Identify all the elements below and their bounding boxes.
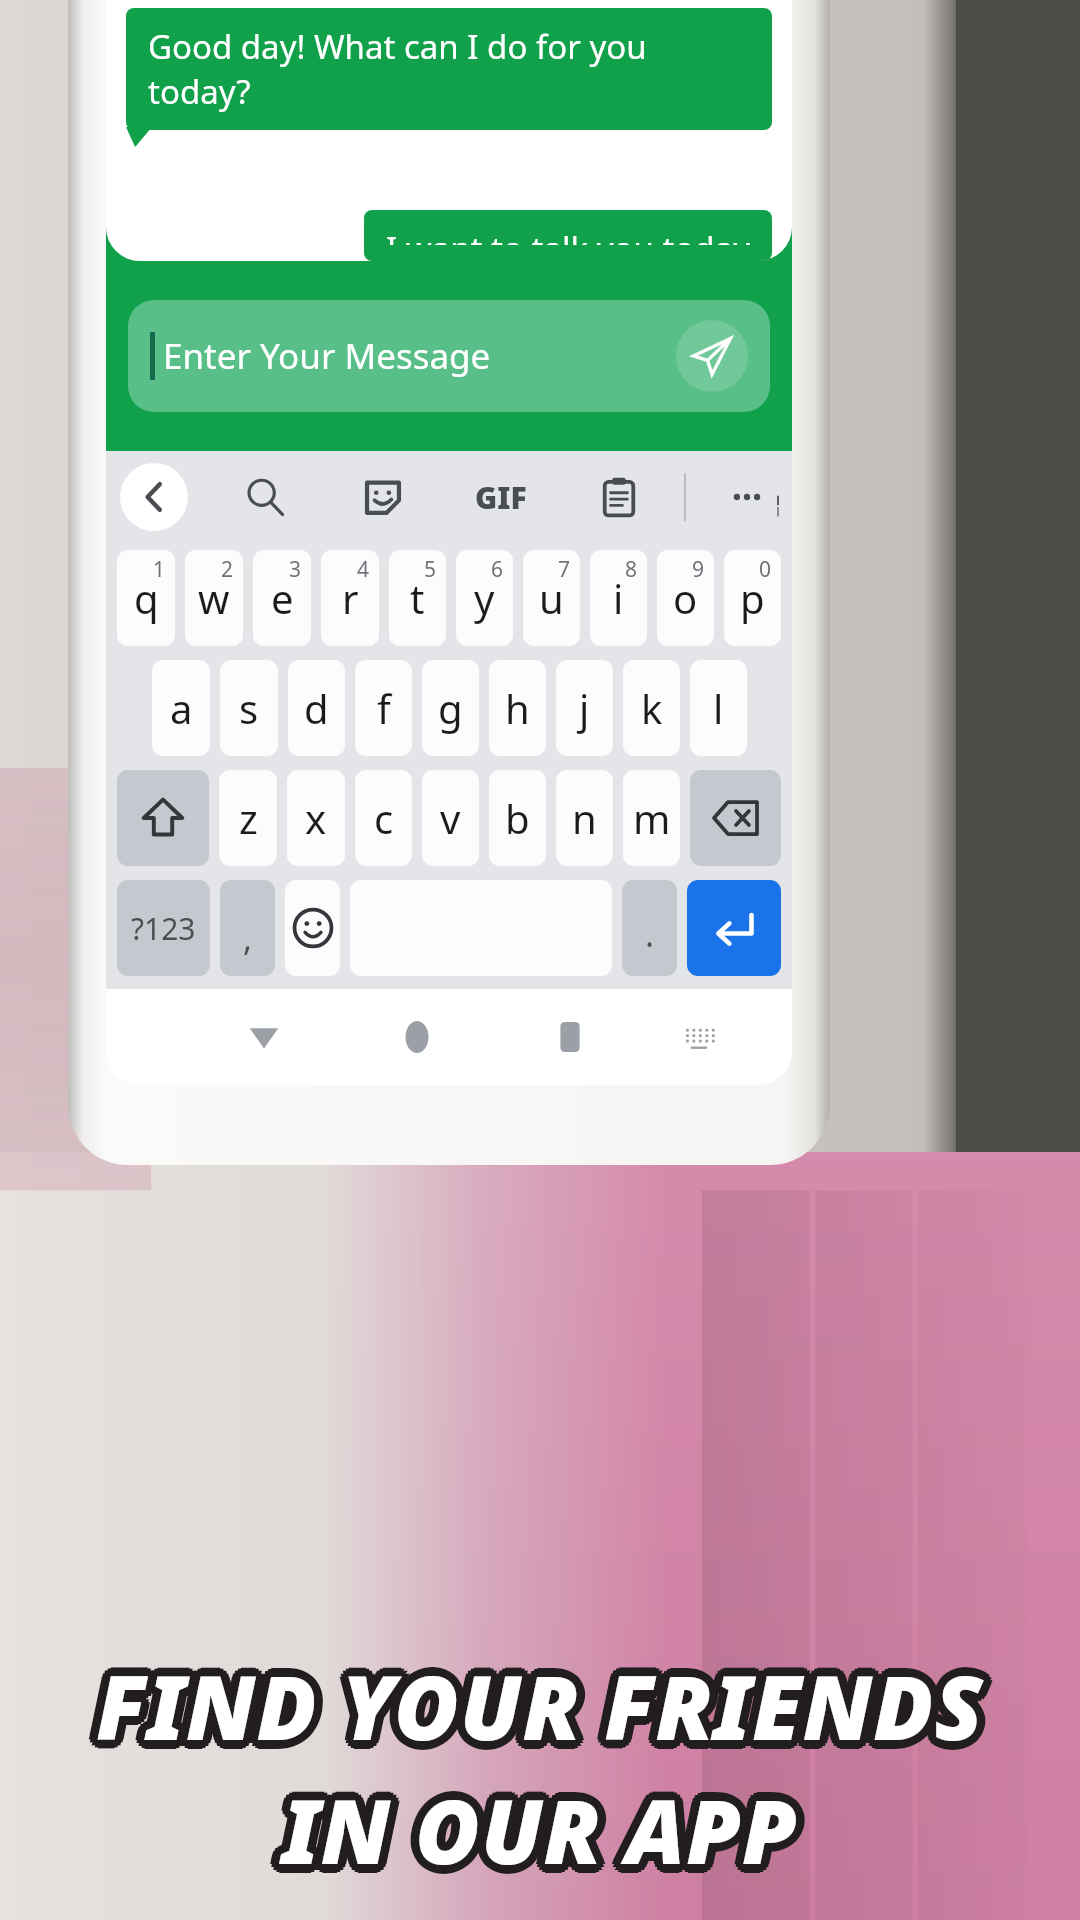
staticText: c <box>374 791 394 845</box>
staticText: IN OUR APP <box>291 1770 807 1890</box>
staticText: FIND YOUR FRIENDS <box>93 1654 981 1774</box>
staticText: 6 <box>491 555 504 584</box>
staticText: ?123 <box>131 908 196 949</box>
staticText: n <box>572 791 597 845</box>
staticText: FIND YOUR FRIENDS <box>102 1652 990 1772</box>
staticText: x <box>305 791 327 845</box>
button[interactable]: z <box>219 770 277 866</box>
button[interactable]: Back <box>120 463 188 531</box>
staticText: IN OUR APP <box>290 1773 806 1893</box>
button[interactable]: Hide keyboard <box>214 989 313 1085</box>
button[interactable]: Send <box>676 320 748 392</box>
button[interactable]: o <box>657 550 714 646</box>
staticText: IN OUR APP <box>285 1762 801 1882</box>
staticText: Good day! What can I do for you today? <box>148 24 750 114</box>
staticText: , <box>243 915 253 961</box>
button[interactable]: i <box>590 550 647 646</box>
staticText: IN OUR APP <box>285 1778 801 1898</box>
staticText: l <box>713 681 724 735</box>
staticText: 7 <box>558 555 571 584</box>
button[interactable]: I want to talk you today <box>364 210 772 261</box>
staticText: y <box>474 571 495 625</box>
button[interactable]: y <box>456 550 513 646</box>
staticText: 4 <box>357 555 370 584</box>
button[interactable]: u <box>523 550 580 646</box>
button[interactable]: Good day! What can I do for you today? <box>126 8 772 130</box>
staticText: k <box>641 681 663 735</box>
button[interactable]: Stickers <box>352 466 414 528</box>
staticText: Enter Your Message <box>163 332 491 380</box>
staticText: IN OUR APP <box>288 1764 804 1884</box>
button[interactable]: Enter <box>687 880 781 976</box>
staticText: w <box>198 571 230 625</box>
button[interactable]: v <box>422 770 479 866</box>
staticText: g <box>438 681 463 735</box>
staticText: FIND YOUR FRIENDS <box>90 1640 978 1760</box>
button[interactable]: q <box>117 550 175 646</box>
staticText: b <box>505 791 530 845</box>
button[interactable]: g <box>422 660 479 756</box>
button[interactable]: t <box>389 550 446 646</box>
button[interactable]: d <box>288 660 345 756</box>
staticText: FIND YOUR FRIENDS <box>104 1643 992 1763</box>
staticText: IN OUR APP <box>288 1776 804 1896</box>
staticText: FIND YOUR FRIENDS <box>99 1654 987 1774</box>
button[interactable]: Search <box>234 466 296 528</box>
button[interactable]: c <box>355 770 412 866</box>
button[interactable]: ?123 <box>117 880 210 976</box>
staticText: FIND YOUR FRIENDS <box>105 1646 993 1766</box>
button[interactable]: Backspace <box>690 770 781 866</box>
staticText: a <box>170 681 193 735</box>
button[interactable]: Recents <box>520 989 619 1085</box>
button[interactable]: n <box>556 770 613 866</box>
button[interactable]: Home <box>367 989 466 1085</box>
button[interactable]: p <box>724 550 781 646</box>
button[interactable]: x <box>287 770 345 866</box>
button[interactable]: w <box>185 550 243 646</box>
staticText: t <box>410 571 425 625</box>
staticText: f <box>377 681 391 735</box>
staticText: IN OUR APP <box>274 1773 790 1893</box>
staticText: v <box>440 791 461 845</box>
button[interactable]: k <box>623 660 680 756</box>
staticText: I want to talk you today <box>386 226 750 245</box>
staticText: FIND YOUR FRIENDS <box>102 1640 990 1760</box>
staticText: 8 <box>625 555 638 584</box>
staticText: IN OUR APP <box>279 1762 795 1882</box>
staticText: s <box>239 681 259 735</box>
button[interactable]: Enter Your Message <box>128 300 770 412</box>
staticText: FIND YOUR FRIENDS <box>96 1655 984 1775</box>
staticText: e <box>271 571 294 625</box>
staticText: FIND YOUR FRIENDS <box>93 1638 981 1758</box>
button[interactable]: GIF <box>470 466 532 528</box>
button[interactable]: s <box>220 660 278 756</box>
button[interactable]: j <box>556 660 613 756</box>
button[interactable]: Switch keyboard <box>654 989 743 1085</box>
button[interactable]: h <box>489 660 546 756</box>
button[interactable]: , <box>220 880 275 976</box>
staticText: FIND YOUR FRIENDS <box>104 1649 992 1769</box>
button[interactable]: . <box>622 880 677 976</box>
button[interactable]: Clipboard <box>588 466 650 528</box>
button[interactable]: l <box>690 660 747 756</box>
button[interactable]: Shift <box>117 770 209 866</box>
staticText: r <box>342 571 359 625</box>
staticText: 9 <box>692 555 705 584</box>
button[interactable]: a <box>152 660 210 756</box>
staticText: m <box>633 791 671 845</box>
staticText: q <box>134 571 159 625</box>
button[interactable]: r <box>321 550 379 646</box>
button[interactable]: b <box>489 770 546 866</box>
staticText: FIND YOUR FRIENDS <box>88 1643 976 1763</box>
button[interactable]: f <box>355 660 412 756</box>
staticText: FIND YOUR FRIENDS <box>96 1637 984 1757</box>
staticText: IN OUR APP <box>290 1767 806 1887</box>
button[interactable]: More options <box>716 466 778 528</box>
staticText: IN OUR APP <box>274 1767 790 1887</box>
button[interactable]: m <box>623 770 680 866</box>
staticText: z <box>239 791 258 845</box>
staticText: i <box>613 571 624 625</box>
button[interactable]: e <box>253 550 311 646</box>
button[interactable]: Emoji <box>285 880 340 976</box>
